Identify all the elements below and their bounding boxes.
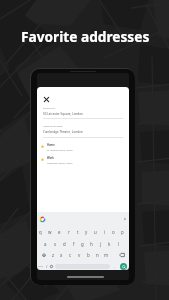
button[interactable]: p <box>118 226 127 237</box>
button[interactable]: d <box>60 238 69 249</box>
staticText: j <box>100 241 102 247</box>
staticText: b <box>87 252 90 258</box>
button[interactable]: u <box>91 226 100 237</box>
button[interactable]: Work <box>41 156 124 168</box>
staticText: z <box>52 252 55 258</box>
staticText: Where are you going? <box>43 125 63 128</box>
button[interactable]: q <box>37 226 45 237</box>
staticText: p <box>121 229 124 235</box>
button[interactable]: z <box>49 249 57 260</box>
button[interactable]: Close <box>43 96 50 103</box>
staticText: w <box>48 229 52 235</box>
staticText: Work <box>47 156 54 160</box>
staticText: h <box>90 241 93 247</box>
staticText: u <box>94 229 97 235</box>
button[interactable]: o <box>109 226 118 237</box>
staticText: Favorite addresses <box>21 27 150 46</box>
staticText: n <box>96 252 99 258</box>
button[interactable]: More <box>123 217 127 221</box>
button[interactable]: w <box>45 226 55 237</box>
button[interactable]: l <box>114 238 123 249</box>
button[interactable]: Google Assistant <box>40 217 45 222</box>
button[interactable]: m <box>102 249 111 260</box>
button[interactable]: j <box>96 238 105 249</box>
button[interactable]: Search <box>120 263 127 270</box>
button[interactable]: Shift <box>41 252 47 258</box>
button[interactable]: Backspace <box>119 252 125 258</box>
staticText: a <box>44 241 47 247</box>
staticText: d <box>63 241 66 247</box>
staticText: s <box>54 241 57 247</box>
staticText: t <box>77 229 79 235</box>
button[interactable]: a <box>40 238 50 249</box>
button[interactable]: k <box>105 238 114 249</box>
button[interactable]: x <box>57 249 66 260</box>
staticText: 50 Leicester Square, London <box>47 149 73 152</box>
staticText: q <box>39 229 42 235</box>
staticText: Cambridge Theatre, London <box>47 162 73 165</box>
staticText: o <box>112 229 115 235</box>
button[interactable]: e <box>55 226 64 237</box>
button[interactable]: r <box>64 226 73 237</box>
staticText: r <box>68 229 70 235</box>
button[interactable]: t <box>73 226 82 237</box>
staticText: c <box>69 252 72 258</box>
button[interactable]: v <box>75 249 84 260</box>
staticText: g <box>81 241 84 247</box>
button[interactable]: i <box>100 226 109 237</box>
button[interactable]: b <box>84 249 93 260</box>
button[interactable]: h <box>87 238 96 249</box>
button[interactable]: s <box>50 238 60 249</box>
staticText: e <box>58 229 61 235</box>
button[interactable]: g <box>78 238 87 249</box>
button[interactable]: n <box>93 249 102 260</box>
button[interactable]: Emoji <box>50 265 53 268</box>
staticText: x <box>60 252 63 258</box>
button[interactable]: f <box>69 238 78 249</box>
staticText: l <box>118 241 120 247</box>
button[interactable]: / <box>46 264 48 269</box>
staticText: k <box>108 241 111 247</box>
staticText: Cambridge Theatre, London <box>43 130 83 134</box>
button[interactable]: ?123 <box>38 265 43 268</box>
button[interactable]: . <box>114 264 116 269</box>
button[interactable]: Home <box>41 143 124 155</box>
button[interactable]: c <box>66 249 75 260</box>
button[interactable]: y <box>82 226 91 237</box>
staticText: f <box>73 241 75 247</box>
staticText: m <box>104 252 109 258</box>
staticText: i <box>104 229 106 235</box>
staticText: 50 Leicester Square, London <box>43 112 83 116</box>
staticText: y <box>85 229 88 235</box>
staticText: Pick me up at <box>43 107 55 110</box>
staticText: v <box>78 252 81 258</box>
staticText: Home <box>47 143 55 147</box>
